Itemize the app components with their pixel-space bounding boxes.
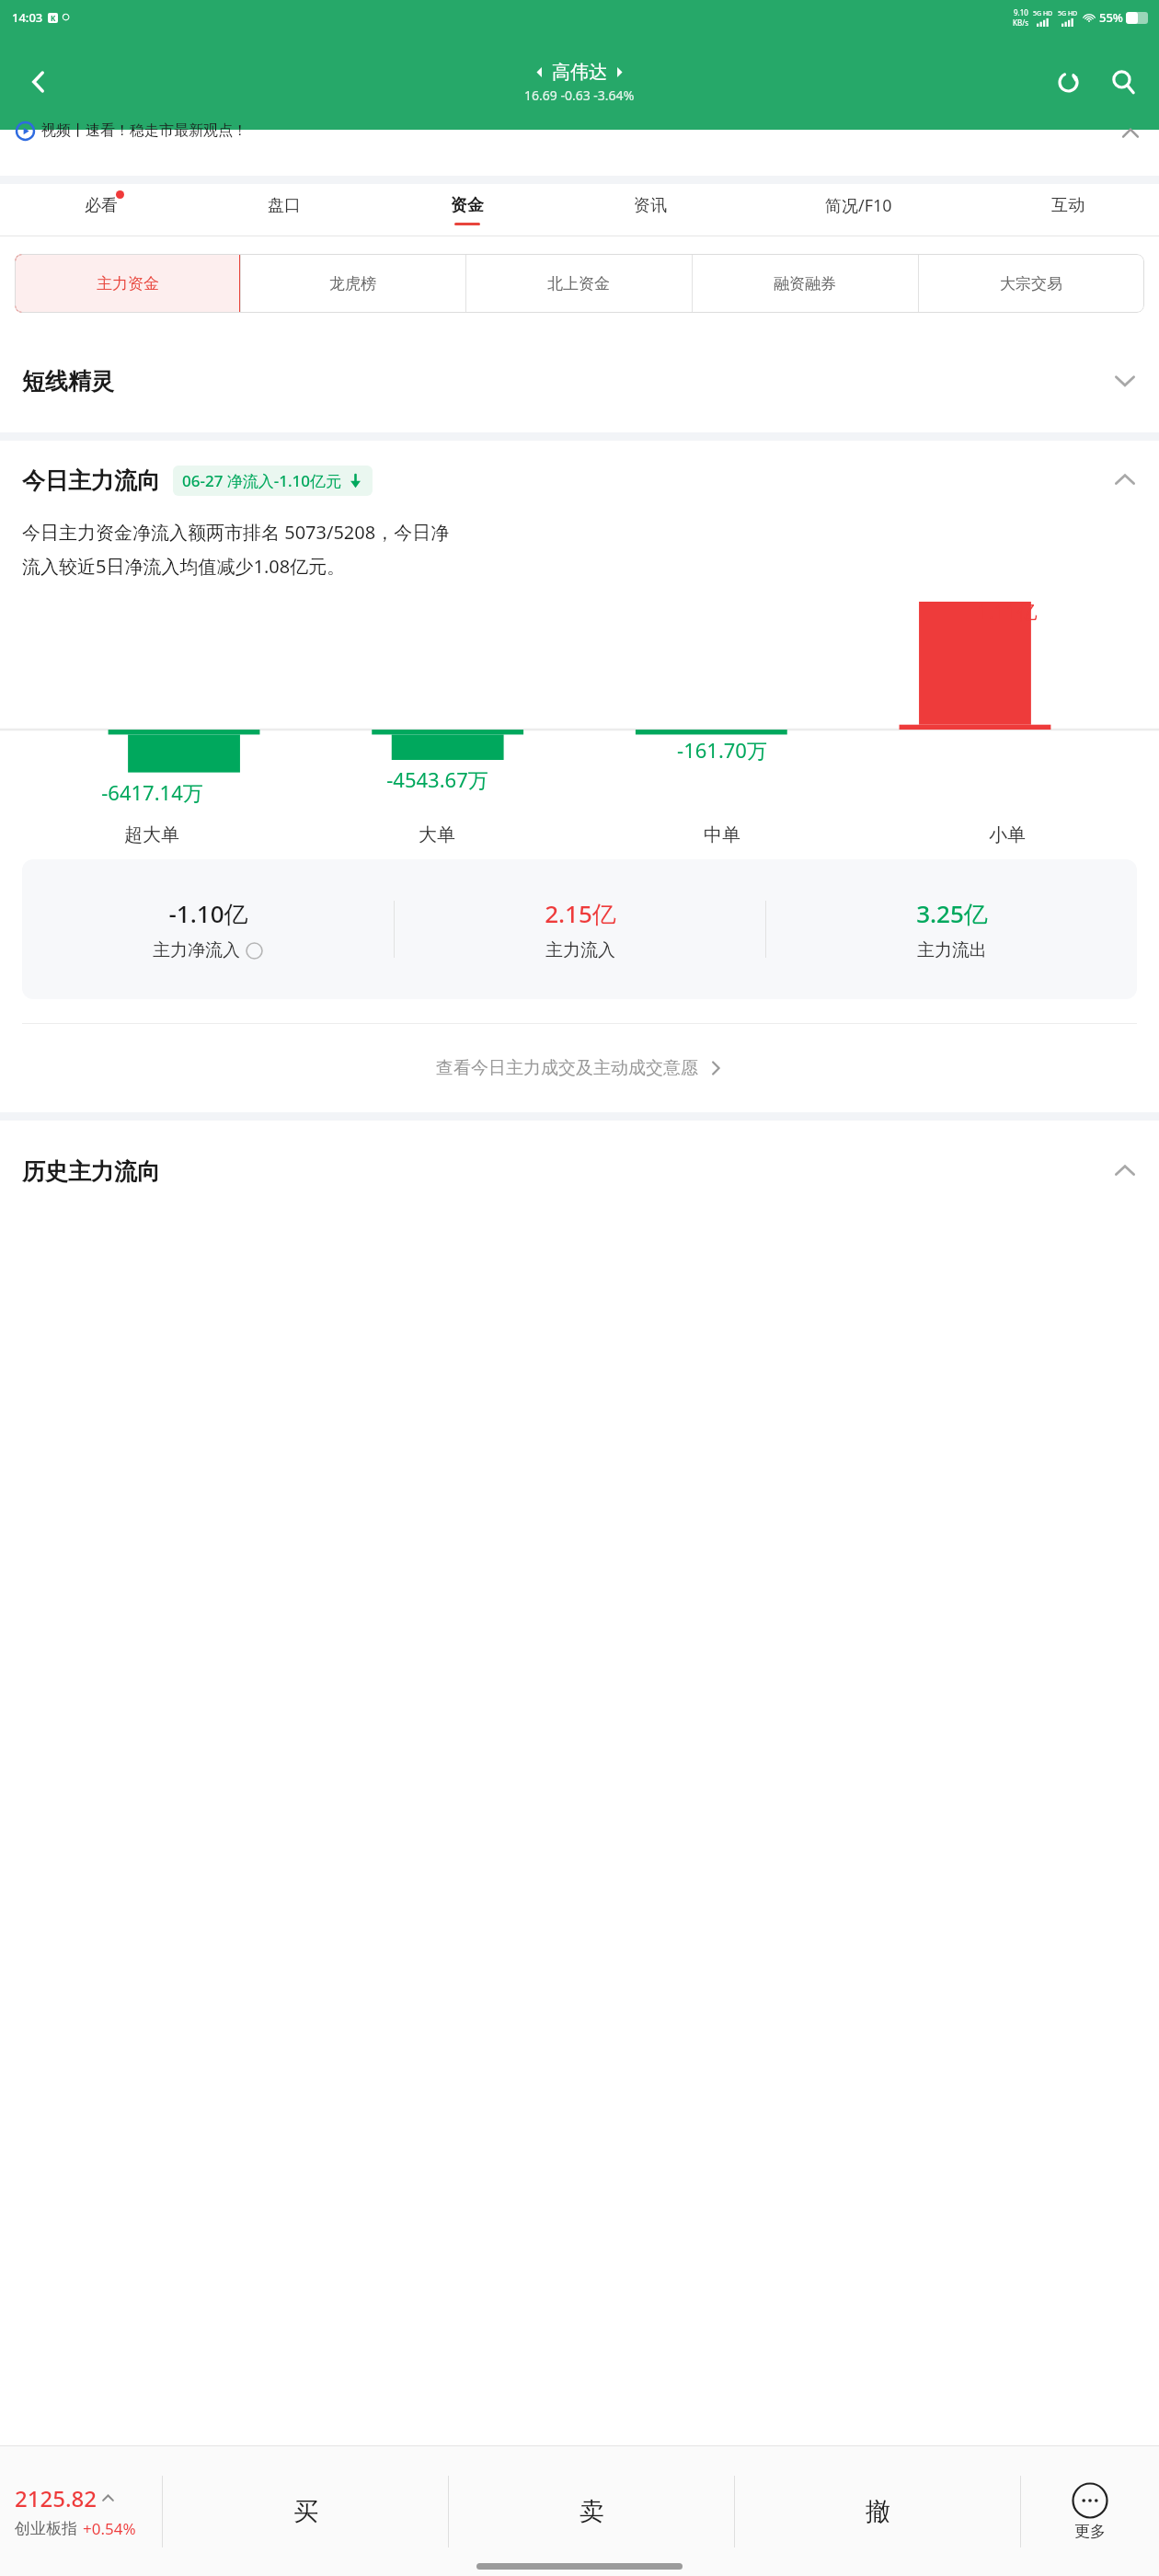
staticText: 大宗交易	[1000, 274, 1062, 293]
staticText: 主力流出	[917, 939, 987, 961]
staticText: 主力资金	[97, 274, 159, 293]
staticText: 3.25亿	[916, 897, 988, 930]
staticText: 55%	[1099, 9, 1123, 26]
button[interactable]: 必看	[9, 184, 192, 236]
staticText: 1.11亿	[977, 597, 1038, 625]
staticText: 简况/F10	[825, 194, 892, 217]
staticText: 资金	[451, 195, 484, 216]
button[interactable]: 更多	[1021, 2446, 1159, 2576]
button[interactable]: -1.10亿	[22, 897, 394, 961]
button[interactable]: 资讯	[558, 184, 741, 236]
button[interactable]: 查看今日主力成交及主动成交意愿	[0, 1024, 1159, 1112]
staticText: 主力流入	[545, 939, 615, 961]
button[interactable]: 收起	[1120, 124, 1141, 144]
button[interactable]: 搜索	[1100, 59, 1146, 105]
staticText: 互动	[1051, 195, 1084, 216]
button[interactable]: 历史主力流向	[0, 1121, 1159, 1222]
staticText: 5G HD	[1033, 9, 1053, 18]
staticText: 2.15亿	[545, 897, 616, 930]
staticText: 短线精灵	[22, 367, 114, 396]
staticText: 融资融券	[774, 274, 836, 293]
staticText: 今日主力资金净流入额两市排名 5073/5208，今日净	[22, 520, 450, 545]
staticText: 小单	[989, 823, 1026, 846]
staticText: 视频丨速看！稳走市最新观点！	[41, 121, 247, 140]
button[interactable]: 撤	[735, 2446, 1020, 2576]
staticText: 2125.82	[15, 2483, 97, 2513]
staticText: 中单	[704, 823, 740, 846]
staticText: 查看今日主力成交及主动成交意愿	[436, 1057, 698, 1079]
button[interactable]: 融资融券	[692, 254, 918, 313]
button[interactable]: 返回	[13, 56, 64, 108]
button[interactable]: 简况/F10	[741, 184, 976, 236]
button[interactable]: 3.25亿	[766, 897, 1137, 961]
button[interactable]: 大宗交易	[918, 254, 1144, 313]
staticText: 16.69 -0.63 -3.64%	[524, 86, 635, 104]
staticText: 盘口	[268, 195, 301, 216]
button[interactable]: 收起今日主力流向	[1111, 466, 1139, 494]
staticText: 更多	[1074, 2522, 1106, 2541]
staticText: 14:03	[12, 9, 43, 26]
staticText: 流入较近5日净流入均值减少1.08亿元。	[22, 554, 346, 579]
staticText: 北上资金	[547, 274, 610, 293]
button[interactable]: 短线精灵	[0, 329, 1159, 432]
staticText: +0.54%	[83, 2518, 136, 2539]
staticText: 高伟达	[552, 61, 607, 84]
button[interactable]: 2125.82	[15, 2483, 162, 2539]
staticText: 创业板指	[15, 2519, 77, 2538]
staticText: 买	[293, 2496, 318, 2527]
staticText: 历史主力流向	[22, 1157, 160, 1186]
staticText: -161.70万	[677, 736, 767, 764]
button[interactable]: 资金	[375, 184, 558, 236]
staticText: 9.10	[1014, 7, 1028, 17]
button[interactable]: 盘口	[192, 184, 375, 236]
staticText: 今日主力流向	[22, 466, 160, 495]
button[interactable]: 分享	[1045, 59, 1091, 105]
staticText: -4543.67万	[386, 765, 488, 793]
staticText: K	[51, 13, 56, 23]
button[interactable]: 卖	[449, 2446, 734, 2576]
staticText: KB/s	[1013, 17, 1028, 28]
staticText: -6417.14万	[101, 778, 203, 806]
staticText: 卖	[579, 2496, 604, 2527]
staticText: 龙虎榜	[329, 274, 376, 293]
button[interactable]: 主力资金	[15, 254, 240, 313]
button[interactable]: 龙虎榜	[240, 254, 465, 313]
staticText: 大单	[419, 823, 455, 846]
button[interactable]: 互动	[976, 184, 1159, 236]
staticText: 5G HD	[1058, 9, 1078, 18]
button[interactable]: 北上资金	[465, 254, 692, 313]
staticText: 主力净流入	[153, 939, 240, 961]
staticText: 超大单	[124, 823, 179, 846]
staticText: 必看	[85, 195, 118, 216]
staticText: 06-27 净流入-1.10亿元	[182, 470, 342, 491]
staticText: 撤	[866, 2496, 890, 2527]
button[interactable]: 买	[163, 2446, 448, 2576]
staticText: -1.10亿	[168, 897, 248, 930]
staticText: 资讯	[634, 195, 667, 216]
button[interactable]: 2.15亿	[395, 897, 765, 961]
